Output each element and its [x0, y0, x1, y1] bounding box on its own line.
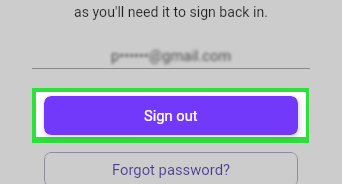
button[interactable]: Forgot password?: [44, 152, 298, 184]
staticText: Forgot password?: [112, 161, 231, 178]
button[interactable]: Sign out: [44, 96, 298, 135]
staticText: as you'll need it to sign back in.: [0, 4, 342, 21]
staticText: Sign out: [144, 107, 198, 124]
staticText: p••••••@gmail.com: [111, 47, 232, 64]
